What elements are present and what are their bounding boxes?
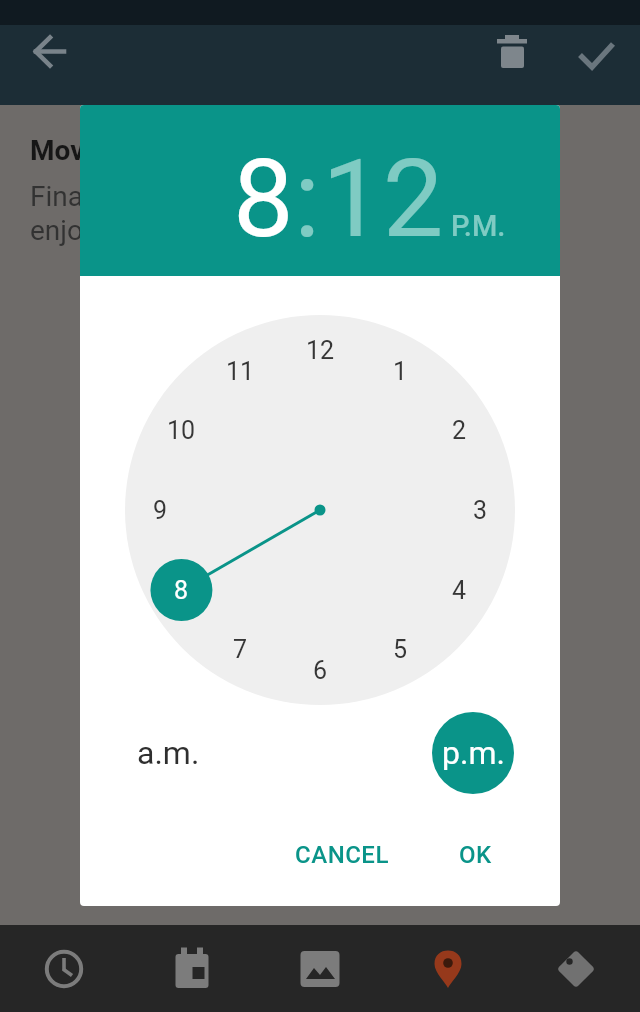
staticText: 12 [306,336,335,365]
staticText: OK [459,841,492,869]
staticText: 8 [174,576,189,605]
staticText: 7 [233,635,248,664]
button[interactable]: CANCEL [257,827,427,882]
button[interactable] [570,29,622,81]
staticText: 9 [153,496,168,525]
staticText: 10 [167,416,196,445]
staticText: 2 [452,416,467,445]
staticText: Movies to w [30,134,181,167]
button[interactable] [128,925,256,1012]
staticText: enjoy a good [30,214,189,247]
button[interactable]: OK [420,827,530,882]
button[interactable] [384,925,512,1012]
staticText: 3 [473,496,488,525]
button[interactable]: p.m. [432,712,514,794]
staticText: p.m. [442,734,505,772]
button[interactable] [256,925,384,1012]
button[interactable] [0,925,128,1012]
button[interactable] [488,29,536,77]
button[interactable] [24,29,76,81]
staticText: : [294,136,321,263]
staticText: Finally find ti [30,180,187,213]
staticText: 8 [174,576,189,605]
staticText: CANCEL [295,841,389,869]
staticText: 4 [452,576,467,605]
staticText: 5 [393,635,408,664]
button[interactable]: a.m. [133,718,203,788]
staticText: a.m. [137,734,200,772]
staticText: 6 [313,656,328,685]
staticText: 1 [393,357,408,386]
staticText: 11 [226,357,255,386]
staticText: 8 [233,136,294,263]
button[interactable] [512,925,640,1012]
staticText: 12 [322,136,444,263]
staticText: P.M. [451,209,506,243]
